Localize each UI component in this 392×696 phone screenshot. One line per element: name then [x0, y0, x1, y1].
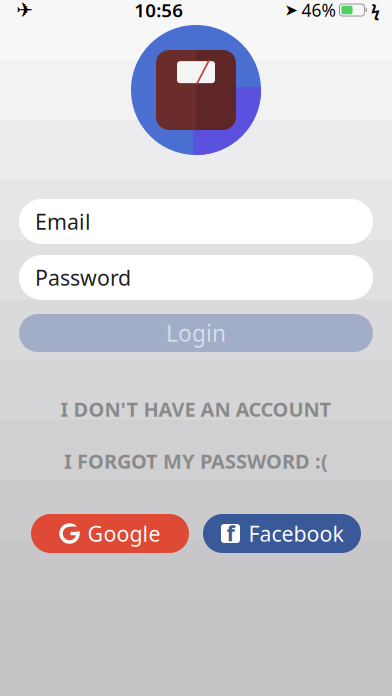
- staticText: ϟ: [371, 0, 380, 21]
- staticText: Login: [166, 318, 226, 348]
- staticText: I FORGOT MY PASSWORD :(: [64, 448, 328, 474]
- button[interactable]: Login: [19, 314, 373, 352]
- staticText: 10:56: [134, 0, 183, 22]
- button[interactable]: I FORGOT MY PASSWORD :(: [19, 446, 373, 476]
- staticText: Google: [87, 519, 160, 548]
- button[interactable]: I DON'T HAVE AN ACCOUNT: [19, 394, 373, 424]
- staticText: Email: [35, 207, 91, 236]
- staticText: f: [226, 519, 234, 547]
- staticText: Facebook: [248, 519, 343, 548]
- staticText: I DON'T HAVE AN ACCOUNT: [60, 396, 331, 422]
- staticText: ➤: [284, 1, 297, 19]
- staticText: ✈: [16, 0, 33, 21]
- staticText: Password: [35, 263, 131, 292]
- button[interactable]: f: [203, 514, 361, 553]
- staticText: 46%: [301, 0, 335, 21]
- button[interactable]: Google: [31, 514, 189, 553]
- staticText: ╱: [196, 60, 209, 84]
